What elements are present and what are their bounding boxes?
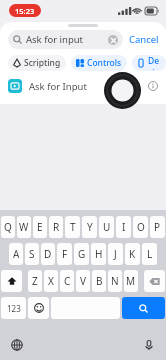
staticText: I — [122, 220, 126, 234]
button[interactable]: Scripting — [8, 55, 66, 71]
staticText: A — [13, 247, 20, 261]
staticText: Devic — [148, 55, 161, 71]
staticText: P — [154, 220, 161, 234]
button[interactable]: U — [99, 216, 114, 238]
button[interactable]: O — [133, 216, 148, 238]
staticText: Q — [4, 220, 12, 234]
button[interactable]: C — [60, 270, 74, 292]
button[interactable]: I — [116, 216, 131, 238]
button[interactable]: Backspace — [144, 270, 165, 292]
button[interactable]: G — [74, 243, 89, 265]
button[interactable]: 123 — [1, 297, 26, 319]
button[interactable]: V — [76, 270, 90, 292]
button[interactable]: M — [124, 270, 138, 292]
button[interactable]: S — [25, 243, 39, 265]
staticText: O — [137, 220, 145, 234]
button[interactable]: Shift — [1, 270, 22, 292]
button[interactable]: Clear text — [108, 35, 118, 45]
button[interactable]: B — [92, 270, 106, 292]
button[interactable]: E — [33, 216, 47, 238]
button[interactable]: P — [150, 216, 165, 238]
button[interactable]: More info — [146, 79, 160, 93]
staticText: Scripting — [24, 57, 61, 69]
button[interactable]: Search — [122, 297, 165, 319]
button[interactable]: D — [41, 243, 55, 265]
button[interactable]: Z — [28, 270, 42, 292]
staticText: K — [129, 247, 136, 261]
button[interactable]: Ask for Input — [0, 74, 166, 98]
staticText: J — [114, 247, 117, 261]
button[interactable]: Y — [82, 216, 97, 238]
button[interactable]: R — [49, 216, 63, 238]
button[interactable]: A — [9, 243, 23, 265]
staticText: L — [147, 247, 153, 261]
button[interactable]: H — [91, 243, 106, 265]
staticText: Controls — [87, 57, 122, 69]
staticText: T — [70, 220, 76, 234]
staticText: G — [78, 247, 86, 261]
staticText: E — [37, 220, 43, 234]
button[interactable]: Controls — [71, 55, 127, 71]
staticText: R — [53, 220, 60, 234]
button[interactable]: Q — [1, 216, 15, 238]
staticText: C — [64, 274, 71, 288]
staticText: Ask for Input — [29, 80, 146, 93]
staticText: Ask for input — [26, 33, 108, 46]
staticText: N — [111, 274, 119, 288]
button[interactable]: Emoji — [28, 297, 49, 319]
staticText: D — [44, 247, 52, 261]
button[interactable]: X — [44, 270, 58, 292]
staticText: U — [103, 220, 111, 234]
button[interactable]: F — [57, 243, 72, 265]
staticText: Cancel — [129, 33, 159, 46]
staticText: B — [96, 274, 103, 288]
staticText: W — [19, 220, 29, 234]
button[interactable]: Cancel — [128, 31, 160, 48]
staticText: Z — [32, 274, 38, 288]
button[interactable]: L — [142, 243, 157, 265]
button[interactable]: J — [108, 243, 123, 265]
staticText: 123 — [7, 303, 21, 314]
staticText: S — [29, 247, 35, 261]
button[interactable]: Ask for input — [8, 30, 123, 49]
button[interactable]: Voice input — [141, 337, 157, 353]
button[interactable]: N — [108, 270, 122, 292]
button[interactable]: W — [17, 216, 31, 238]
staticText: Y — [87, 220, 93, 234]
button[interactable]: Devic — [132, 55, 166, 71]
staticText: V — [80, 274, 86, 288]
staticText: F — [62, 247, 68, 261]
button[interactable]: T — [65, 216, 80, 238]
staticText: H — [95, 247, 103, 261]
staticText: X — [48, 274, 54, 288]
staticText: 15:23 — [15, 6, 35, 16]
button[interactable]: K — [125, 243, 140, 265]
staticText: M — [126, 274, 136, 288]
button[interactable]: Change keyboard language — [9, 337, 25, 353]
